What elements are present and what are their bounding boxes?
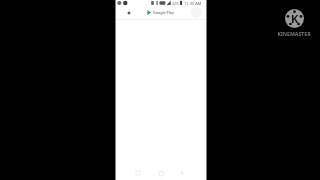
staticText: Google Play [153, 10, 174, 15]
button[interactable]: Account [191, 7, 202, 18]
button[interactable]: Close [123, 7, 135, 19]
button[interactable]: Recents [130, 167, 146, 179]
staticText: KINEMASTER [277, 30, 311, 37]
staticText: 44% [172, 1, 179, 6]
button[interactable]: Home [153, 167, 169, 179]
button[interactable]: Back [173, 167, 189, 179]
staticText: K [291, 11, 299, 26]
staticText: 11:35 AM [184, 1, 202, 6]
